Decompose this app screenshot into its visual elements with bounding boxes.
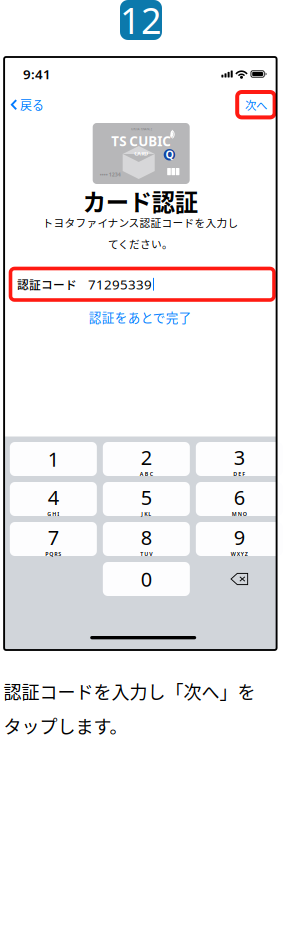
button[interactable]: 8	[103, 522, 190, 556]
staticText: 9:41	[23, 65, 51, 83]
staticText: Q	[165, 147, 173, 161]
button[interactable]: 5	[103, 482, 190, 516]
staticText: 4	[48, 484, 59, 510]
staticText: TOYOTA FINANCE	[131, 127, 152, 131]
staticText: 戻る	[20, 96, 44, 113]
staticText: 7	[48, 524, 59, 550]
button[interactable]: 3	[196, 442, 283, 476]
button[interactable]: 次へ	[237, 92, 275, 117]
button[interactable]: 2	[103, 442, 190, 476]
staticText: 1	[48, 446, 59, 472]
staticText: 次へ	[245, 96, 267, 113]
staticText: カード認証	[83, 184, 198, 218]
staticText: ABC	[140, 470, 153, 478]
staticText: 認証をあとで完了	[89, 308, 192, 326]
staticText: PQRS	[45, 550, 61, 558]
staticText: トヨタファイナンス認証コードを入力し てください。	[42, 215, 238, 251]
button[interactable]: 戻る	[10, 96, 45, 114]
staticText: 71295339	[88, 275, 152, 293]
staticText: CARD	[134, 150, 148, 157]
staticText: GHI	[47, 510, 59, 518]
button[interactable]: Delete	[196, 562, 283, 596]
staticText: 3	[234, 444, 245, 470]
button[interactable]: 7	[10, 522, 97, 556]
staticText: MNO	[232, 510, 247, 518]
button[interactable]: 認証をあとで完了	[4, 309, 277, 325]
button[interactable]: 1	[10, 442, 97, 476]
staticText: 認証コードを入力し「次へ」を タップします。	[3, 678, 255, 739]
button[interactable]: 9	[196, 522, 283, 556]
staticText: 認証コード	[17, 276, 77, 293]
button[interactable]: 4	[10, 482, 97, 516]
staticText: 12	[120, 0, 162, 44]
staticText: DEF	[233, 470, 245, 478]
staticText: 0	[141, 566, 152, 592]
staticText: TS CUBIC	[111, 132, 171, 150]
staticText: 9	[234, 524, 245, 550]
button[interactable]: 0	[103, 562, 190, 596]
staticText: TUV	[140, 550, 152, 558]
staticText: 8	[141, 524, 152, 550]
staticText: WXYZ	[231, 550, 248, 558]
staticText: 2	[141, 444, 152, 470]
staticText: •••• 1234	[100, 171, 121, 178]
staticText: 6	[234, 484, 245, 510]
button[interactable]: 6	[196, 482, 283, 516]
staticText: 5	[141, 484, 152, 510]
staticText: JKL	[141, 510, 151, 518]
